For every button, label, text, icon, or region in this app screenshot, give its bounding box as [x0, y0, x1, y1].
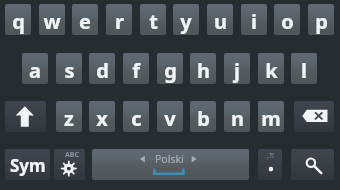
button[interactable]: y — [173, 4, 199, 35]
staticText: j — [234, 57, 240, 84]
button[interactable]: x — [89, 101, 115, 132]
button[interactable]: q — [5, 4, 31, 35]
button[interactable]: l — [291, 53, 317, 84]
staticText: o — [281, 8, 294, 35]
button[interactable]: t — [140, 4, 166, 35]
button[interactable]: s — [56, 53, 82, 84]
button[interactable]: v — [157, 101, 183, 132]
button[interactable]: m — [258, 101, 284, 132]
staticText: z — [64, 105, 74, 132]
staticText: l — [301, 57, 307, 84]
staticText: ,?! — [267, 151, 274, 161]
button[interactable]: r — [106, 4, 132, 35]
button[interactable]: u — [207, 4, 233, 35]
button[interactable]: o — [274, 4, 300, 35]
button[interactable]: h — [190, 53, 216, 84]
staticText: u — [214, 8, 227, 35]
button[interactable]: b — [190, 101, 216, 132]
button[interactable]: k — [258, 53, 284, 84]
staticText: k — [265, 57, 278, 84]
button[interactable]: z — [56, 101, 82, 132]
button[interactable]: n — [224, 101, 250, 132]
button[interactable]: w — [39, 4, 65, 35]
staticText: f — [132, 57, 140, 84]
staticText: b — [197, 105, 210, 132]
staticText: t — [149, 8, 158, 35]
button[interactable]: c — [123, 101, 149, 132]
staticText: n — [231, 105, 244, 132]
staticText: Polski — [155, 152, 184, 166]
button[interactable]: Polski — [92, 149, 249, 180]
staticText: y — [180, 8, 192, 35]
button[interactable]: g — [157, 53, 183, 84]
staticText: d — [96, 57, 109, 84]
staticText: h — [197, 57, 210, 84]
staticText: x — [96, 105, 108, 132]
button[interactable]: Settings — [54, 149, 85, 180]
button[interactable]: i — [241, 4, 267, 35]
staticText: ABC — [65, 150, 79, 160]
staticText: Sym — [10, 154, 46, 177]
button[interactable]: Search — [291, 149, 334, 180]
staticText: i — [251, 8, 257, 35]
staticText: q — [12, 8, 25, 35]
button[interactable]: Shift — [5, 101, 46, 132]
button[interactable]: j — [224, 53, 250, 84]
staticText: s — [64, 57, 75, 84]
button[interactable]: Period — [258, 149, 282, 180]
staticText: m — [261, 105, 281, 132]
button[interactable]: Backspace — [294, 101, 334, 132]
staticText: v — [164, 105, 176, 132]
staticText: r — [115, 8, 124, 35]
button[interactable]: p — [308, 4, 334, 35]
button[interactable]: f — [123, 53, 149, 84]
button[interactable]: Sym — [5, 149, 50, 180]
button[interactable]: a — [22, 53, 48, 84]
staticText: g — [164, 57, 177, 84]
button[interactable]: d — [89, 53, 115, 84]
staticText: e — [79, 8, 91, 35]
staticText: p — [315, 8, 328, 35]
staticText: w — [43, 8, 61, 35]
staticText: a — [29, 57, 41, 84]
staticText: c — [131, 105, 142, 132]
button[interactable]: e — [72, 4, 98, 35]
